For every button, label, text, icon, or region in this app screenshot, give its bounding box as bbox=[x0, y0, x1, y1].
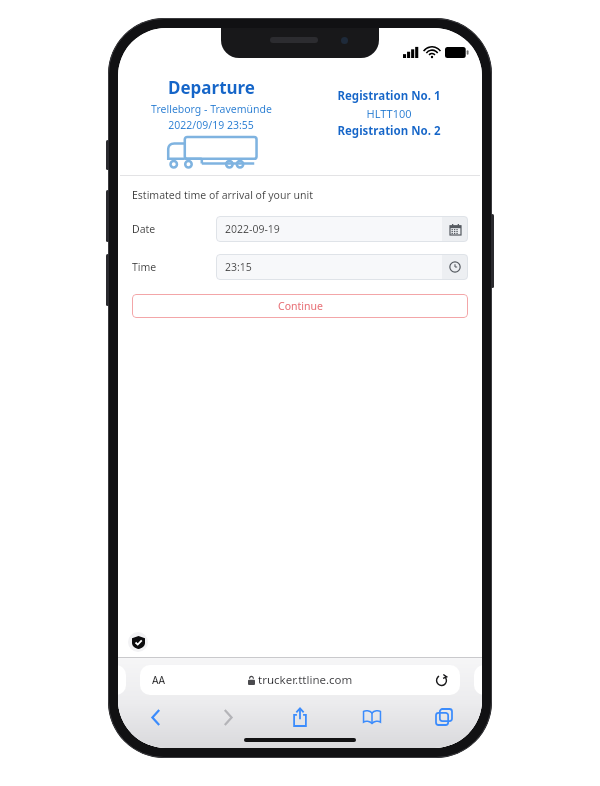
button[interactable]: Privacy report bbox=[128, 632, 148, 652]
staticText: 23:15 bbox=[225, 260, 252, 274]
staticText: Registration No. 1 bbox=[337, 88, 441, 104]
other: Pick time bbox=[449, 261, 461, 273]
button[interactable]: Share bbox=[280, 702, 320, 732]
button[interactable]: AA bbox=[140, 665, 460, 695]
staticText: 2022/09/19 23:55 bbox=[168, 118, 254, 132]
staticText: Date bbox=[132, 222, 216, 236]
other: Truck bbox=[165, 135, 257, 169]
staticText: AA bbox=[152, 673, 166, 687]
button[interactable]: Back bbox=[136, 702, 176, 732]
button[interactable]: Tabs bbox=[424, 702, 464, 732]
staticText: Departure bbox=[168, 76, 255, 99]
staticText: Continue bbox=[278, 299, 323, 313]
other: Pick date bbox=[450, 224, 461, 235]
staticText: Estimated time of arrival of your unit bbox=[132, 188, 314, 202]
staticText: Time bbox=[132, 260, 216, 274]
staticText: Trelleborg - Travemünde bbox=[151, 102, 272, 116]
button[interactable]: Forward bbox=[208, 702, 248, 732]
staticText: Registration No. 2 bbox=[337, 123, 441, 139]
button[interactable]: 23:15 bbox=[216, 254, 468, 280]
button[interactable]: Previous tab bbox=[118, 665, 126, 695]
button[interactable]: Bookmarks bbox=[352, 702, 392, 732]
staticText: trucker.ttline.com bbox=[258, 672, 353, 688]
button[interactable]: 2022-09-19 bbox=[216, 216, 468, 242]
staticText: HLTT100 bbox=[366, 106, 412, 121]
staticText: 2022-09-19 bbox=[225, 222, 280, 236]
button[interactable]: Next tab bbox=[474, 665, 482, 695]
button[interactable]: Continue bbox=[132, 294, 468, 318]
